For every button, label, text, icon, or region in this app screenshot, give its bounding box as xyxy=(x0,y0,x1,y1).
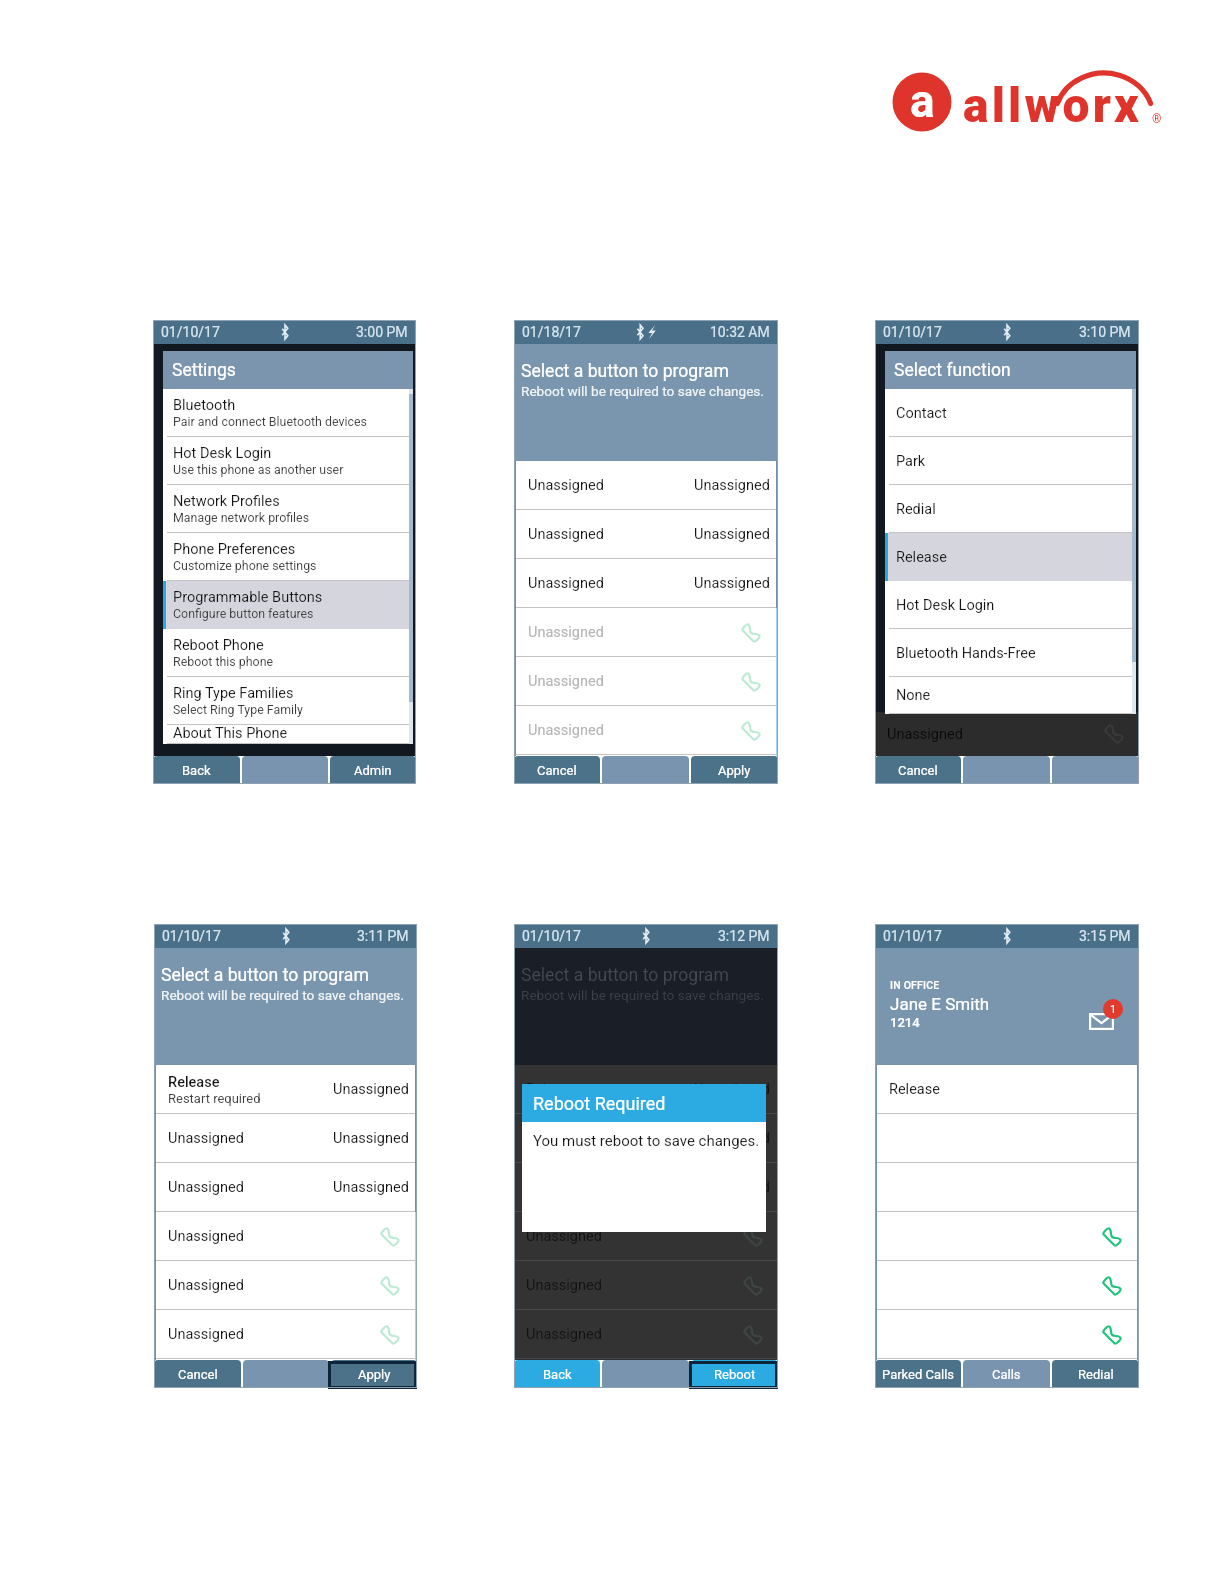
button[interactable]: Bluetooth Hands-Free xyxy=(885,629,1136,677)
staticText: Manage network profiles xyxy=(173,510,310,525)
button[interactable]: Unassigned xyxy=(514,1114,778,1163)
button[interactable] xyxy=(602,1360,689,1388)
staticText: 1214 xyxy=(890,1015,920,1030)
button[interactable] xyxy=(877,1163,1137,1212)
staticText: Unassigned xyxy=(168,1326,244,1343)
button[interactable] xyxy=(1052,756,1139,784)
staticText: 10:32 AM xyxy=(710,324,770,340)
button[interactable]: Redial xyxy=(885,485,1136,533)
staticText: Redial xyxy=(1078,1367,1114,1382)
button[interactable] xyxy=(243,1360,329,1388)
button[interactable]: Release xyxy=(885,533,1136,581)
staticText: Restart required xyxy=(168,1091,261,1106)
staticText: Unassigned xyxy=(333,1179,409,1196)
staticText: 01/10/17 xyxy=(161,324,220,340)
staticText: Contact xyxy=(896,405,947,422)
staticText: Select a button to program xyxy=(161,965,369,986)
button[interactable]: Ring Type Families xyxy=(163,677,413,725)
button[interactable]: None xyxy=(885,677,1136,714)
other: Call xyxy=(740,720,762,742)
button[interactable]: Reboot xyxy=(691,1360,778,1388)
button[interactable]: Programmable Buttons xyxy=(163,581,413,629)
staticText: 01/10/17 xyxy=(883,324,942,340)
button[interactable]: Unassigned xyxy=(514,1212,778,1261)
staticText: You must reboot to save changes. xyxy=(533,1132,760,1150)
staticText: Use this phone as another user xyxy=(173,462,344,477)
staticText: Unassigned xyxy=(694,526,770,543)
button[interactable]: Hot Desk Login xyxy=(163,437,413,485)
button[interactable]: Unassigned xyxy=(156,1261,415,1310)
staticText: Apply xyxy=(358,1367,391,1382)
button[interactable]: Hot Desk Login xyxy=(885,581,1136,629)
button[interactable]: Parked Calls xyxy=(875,1360,961,1388)
button[interactable]: Unassigned xyxy=(516,657,776,706)
button[interactable]: Cancel xyxy=(154,1360,241,1388)
button[interactable]: Contact xyxy=(885,389,1136,437)
button[interactable]: Release xyxy=(156,1065,415,1114)
staticText: Pair and connect Bluetooth devices xyxy=(173,414,367,429)
staticText: Unassigned xyxy=(528,673,604,690)
button[interactable] xyxy=(877,1114,1137,1163)
staticText: Hot Desk Login xyxy=(173,445,272,462)
staticText: Unassigned xyxy=(528,624,604,641)
staticText: Select a button to program xyxy=(521,965,729,986)
button[interactable]: Release xyxy=(514,1065,778,1114)
staticText: Unassigned xyxy=(528,722,604,739)
staticText: Reboot will be required to save changes. xyxy=(161,987,404,1003)
staticText: Cancel xyxy=(898,763,938,778)
button[interactable]: About This Phone xyxy=(163,725,413,744)
button[interactable]: Release xyxy=(877,1065,1137,1114)
button[interactable]: Unassigned xyxy=(516,559,776,608)
other: Call xyxy=(740,622,762,644)
staticText: Select a button to program xyxy=(521,361,729,382)
button[interactable]: Unassigned xyxy=(516,510,776,559)
button[interactable]: Phone Preferences xyxy=(163,533,413,581)
staticText: Reboot Required xyxy=(533,1093,666,1114)
button[interactable]: Calls xyxy=(963,1360,1050,1388)
staticText: Phone information xyxy=(173,742,276,744)
other: Call xyxy=(379,1275,401,1297)
button[interactable]: Apply xyxy=(331,1360,417,1388)
button[interactable]: Unassigned xyxy=(516,608,776,657)
button[interactable]: Unassigned xyxy=(156,1310,415,1359)
button[interactable]: Cancel xyxy=(875,756,961,784)
staticText: Cancel xyxy=(537,763,577,778)
button[interactable]: Unassigned xyxy=(516,706,776,755)
button[interactable]: Back xyxy=(153,756,240,784)
staticText: About This Phone xyxy=(173,725,288,742)
button[interactable] xyxy=(602,756,689,784)
button[interactable]: Unassigned xyxy=(514,1163,778,1212)
button[interactable]: Network Profiles xyxy=(163,485,413,533)
button[interactable]: Unassigned xyxy=(514,1261,778,1310)
button[interactable]: Unassigned xyxy=(516,461,776,510)
staticText: Settings xyxy=(172,360,236,381)
button[interactable]: Apply xyxy=(691,756,778,784)
button[interactable] xyxy=(242,756,328,784)
button[interactable]: Reboot Phone xyxy=(163,629,413,677)
button[interactable] xyxy=(963,756,1050,784)
button[interactable]: Park xyxy=(885,437,1136,485)
staticText: IN OFFICE xyxy=(890,979,940,991)
staticText: 3:12 PM xyxy=(718,928,770,944)
button[interactable]: Unassigned xyxy=(156,1212,415,1261)
button[interactable]: Bluetooth xyxy=(163,389,413,437)
staticText: Unassigned xyxy=(168,1228,244,1245)
button[interactable]: Call xyxy=(877,1310,1137,1359)
button[interactable]: Redial xyxy=(1052,1360,1139,1388)
button[interactable]: Unassigned xyxy=(156,1114,415,1163)
button[interactable]: Call xyxy=(877,1261,1137,1310)
button[interactable]: Cancel xyxy=(514,756,600,784)
staticText: Phone Preferences xyxy=(173,541,296,558)
button[interactable]: Call xyxy=(877,1212,1137,1261)
button[interactable]: Unassigned xyxy=(514,1310,778,1359)
staticText: Back xyxy=(182,763,211,778)
other: Call xyxy=(379,1226,401,1248)
staticText: Unassigned xyxy=(526,1326,602,1343)
staticText: Unassigned xyxy=(528,477,604,494)
other: Call xyxy=(740,671,762,693)
button[interactable]: Voicemail xyxy=(1089,999,1123,1030)
button[interactable]: Unassigned xyxy=(156,1163,415,1212)
button[interactable]: Admin xyxy=(330,756,416,784)
button[interactable]: Back xyxy=(514,1360,600,1388)
